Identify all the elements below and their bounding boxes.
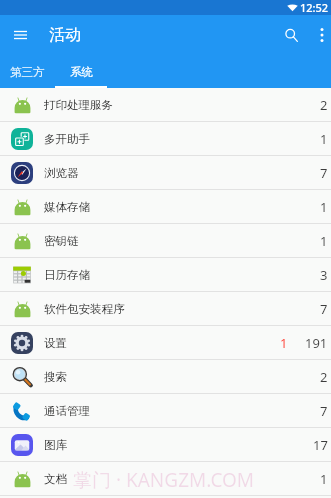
staticText: 通话管理 <box>44 404 90 418</box>
button[interactable]: 日历存储 <box>0 258 331 291</box>
staticText: 2 <box>320 368 328 386</box>
staticText: 文档 <box>44 472 67 486</box>
button[interactable]: 密钥链 <box>0 224 331 257</box>
staticText: 1 <box>320 130 328 148</box>
staticText: 7 <box>320 402 328 420</box>
staticText: 3 <box>320 266 328 284</box>
button[interactable]: 通话管理 <box>0 394 331 427</box>
staticText: 日历存储 <box>44 268 90 282</box>
staticText: 图库 <box>44 438 67 452</box>
button[interactable]: 文档 <box>0 462 331 495</box>
button[interactable]: 第三方 <box>0 55 55 88</box>
button[interactable]: More options <box>313 19 331 51</box>
staticText: 1 <box>320 232 328 250</box>
staticText: 活动 <box>49 25 81 45</box>
staticText: 设置 <box>44 336 67 350</box>
button[interactable]: 图库 <box>0 428 331 461</box>
staticText: 2 <box>320 96 328 114</box>
button[interactable]: 媒体存储 <box>0 190 331 223</box>
button[interactable]: 浏览器 <box>0 156 331 189</box>
staticText: 系统 <box>70 65 93 79</box>
staticText: 打印处理服务 <box>44 98 113 112</box>
button[interactable]: Search <box>275 19 307 51</box>
staticText: 12:52 <box>300 0 329 15</box>
button[interactable]: 系统 <box>55 55 107 88</box>
staticText: 17 <box>313 436 328 454</box>
staticText: 7 <box>320 164 328 182</box>
staticText: 1 <box>320 470 328 488</box>
staticText: 1 <box>280 334 288 352</box>
staticText: 软件包安装程序 <box>44 302 125 316</box>
staticText: 第三方 <box>10 65 45 79</box>
staticText: 7 <box>320 300 328 318</box>
button[interactable]: 多开助手 <box>0 122 331 155</box>
staticText: 191 <box>305 334 328 352</box>
staticText: 搜索 <box>44 370 67 384</box>
staticText: 媒体存储 <box>44 200 90 214</box>
staticText: 密钥链 <box>44 234 79 248</box>
staticText: 掌门 · KANGZM.COM <box>73 467 255 493</box>
button[interactable]: 软件包安装程序 <box>0 292 331 325</box>
button[interactable]: 打印处理服务 <box>0 88 331 121</box>
staticText: 1 <box>320 198 328 216</box>
staticText: 多开助手 <box>44 132 90 146</box>
button[interactable]: Menu <box>0 15 40 55</box>
button[interactable]: 设置 <box>0 326 331 359</box>
button[interactable]: 搜索 <box>0 360 331 393</box>
staticText: 浏览器 <box>44 166 79 180</box>
